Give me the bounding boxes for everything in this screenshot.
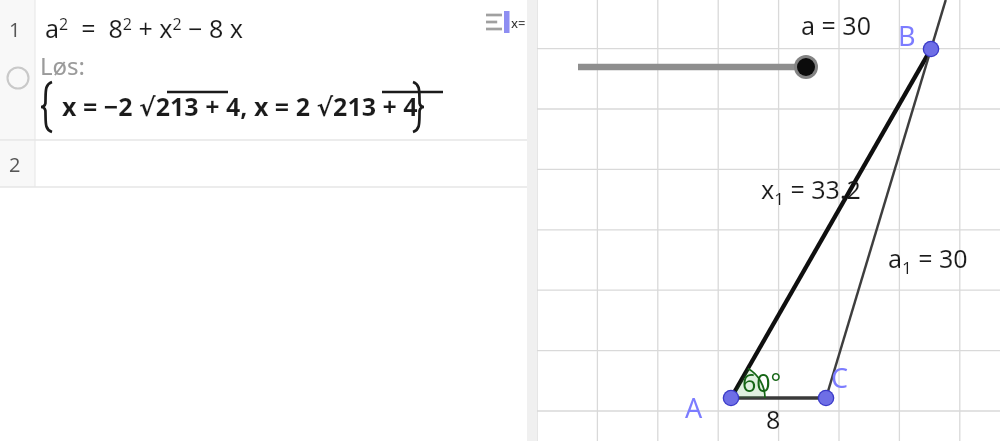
button[interactable]: Algebra view settings <box>478 4 522 42</box>
button[interactable]: Graphics view <box>0 0 1000 441</box>
